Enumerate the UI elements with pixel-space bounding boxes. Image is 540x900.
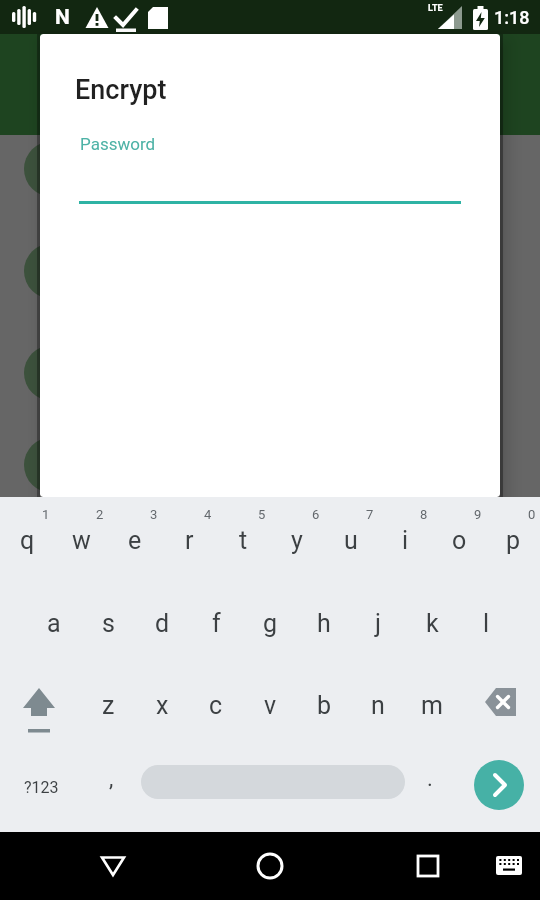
button[interactable]: . (403, 737, 457, 821)
staticText: , (109, 766, 114, 792)
staticText: s (102, 609, 115, 638)
button[interactable]: x (135, 663, 189, 747)
staticText: b (317, 691, 332, 720)
staticText: n (371, 691, 385, 720)
staticText: 2 (96, 507, 104, 522)
staticText: o (452, 526, 467, 555)
staticText: x (156, 691, 169, 720)
staticText: u (344, 526, 358, 555)
staticText: N (55, 5, 70, 30)
staticText: e (128, 526, 142, 555)
button[interactable]: v (243, 663, 297, 747)
staticText: 8 (420, 507, 428, 522)
staticText: d (155, 609, 170, 638)
button[interactable]: w (54, 498, 108, 582)
button[interactable]: ?123 (8, 745, 74, 829)
staticText: 1:18 (494, 7, 530, 28)
staticText: 3 (150, 507, 158, 522)
button[interactable] (474, 760, 524, 810)
staticText: r (185, 526, 194, 555)
staticText: 5 (258, 507, 266, 522)
button[interactable]: s (81, 581, 135, 665)
staticText: 9 (474, 507, 482, 522)
button[interactable] (494, 852, 526, 880)
button[interactable] (248, 844, 292, 888)
staticText: . (427, 766, 433, 792)
staticText: Encrypt (75, 74, 167, 106)
button[interactable]: , (84, 737, 138, 821)
button[interactable]: b (297, 663, 351, 747)
button[interactable]: y (270, 498, 324, 582)
staticText: 4 (204, 507, 212, 522)
button[interactable]: c (189, 663, 243, 747)
button[interactable]: e (108, 498, 162, 582)
button[interactable]: g (243, 581, 297, 665)
staticText: y (291, 526, 303, 555)
staticText: ?123 (24, 778, 59, 797)
staticText: 1 (42, 507, 50, 522)
button[interactable] (141, 765, 405, 799)
button[interactable]: r (162, 498, 216, 582)
staticText: l (483, 609, 490, 638)
staticText: q (20, 526, 35, 555)
button[interactable]: k (405, 581, 459, 665)
staticText: p (506, 526, 521, 555)
button[interactable]: d (135, 581, 189, 665)
button[interactable]: q (0, 498, 54, 582)
staticText: i (402, 526, 409, 555)
staticText: LTE (428, 3, 443, 14)
staticText: k (426, 609, 439, 638)
button[interactable]: i (378, 498, 432, 582)
button[interactable] (472, 663, 534, 747)
button[interactable]: n (351, 663, 405, 747)
staticText: j (375, 609, 381, 638)
button[interactable]: t (216, 498, 270, 582)
button[interactable]: h (297, 581, 351, 665)
button[interactable] (8, 663, 70, 747)
button[interactable]: p (486, 498, 540, 582)
button[interactable]: m (405, 663, 459, 747)
staticText: 0 (528, 507, 536, 522)
staticText: t (239, 526, 248, 555)
button[interactable]: u (324, 498, 378, 582)
staticText: h (317, 609, 331, 638)
staticText: 7 (366, 507, 374, 522)
staticText: v (264, 691, 277, 720)
button[interactable]: l (459, 581, 513, 665)
button[interactable]: j (351, 581, 405, 665)
staticText: c (209, 691, 223, 720)
button[interactable]: f (189, 581, 243, 665)
staticText: w (72, 526, 91, 555)
button[interactable]: o (432, 498, 486, 582)
staticText: Password (80, 134, 156, 154)
staticText: 6 (312, 507, 320, 522)
staticText: f (212, 609, 221, 638)
staticText: m (421, 691, 443, 720)
staticText: z (102, 691, 115, 720)
button[interactable] (91, 844, 135, 888)
button[interactable]: z (81, 663, 135, 747)
button[interactable] (406, 844, 450, 888)
staticText: g (263, 609, 278, 638)
button[interactable]: a (27, 581, 81, 665)
staticText: a (47, 609, 61, 638)
